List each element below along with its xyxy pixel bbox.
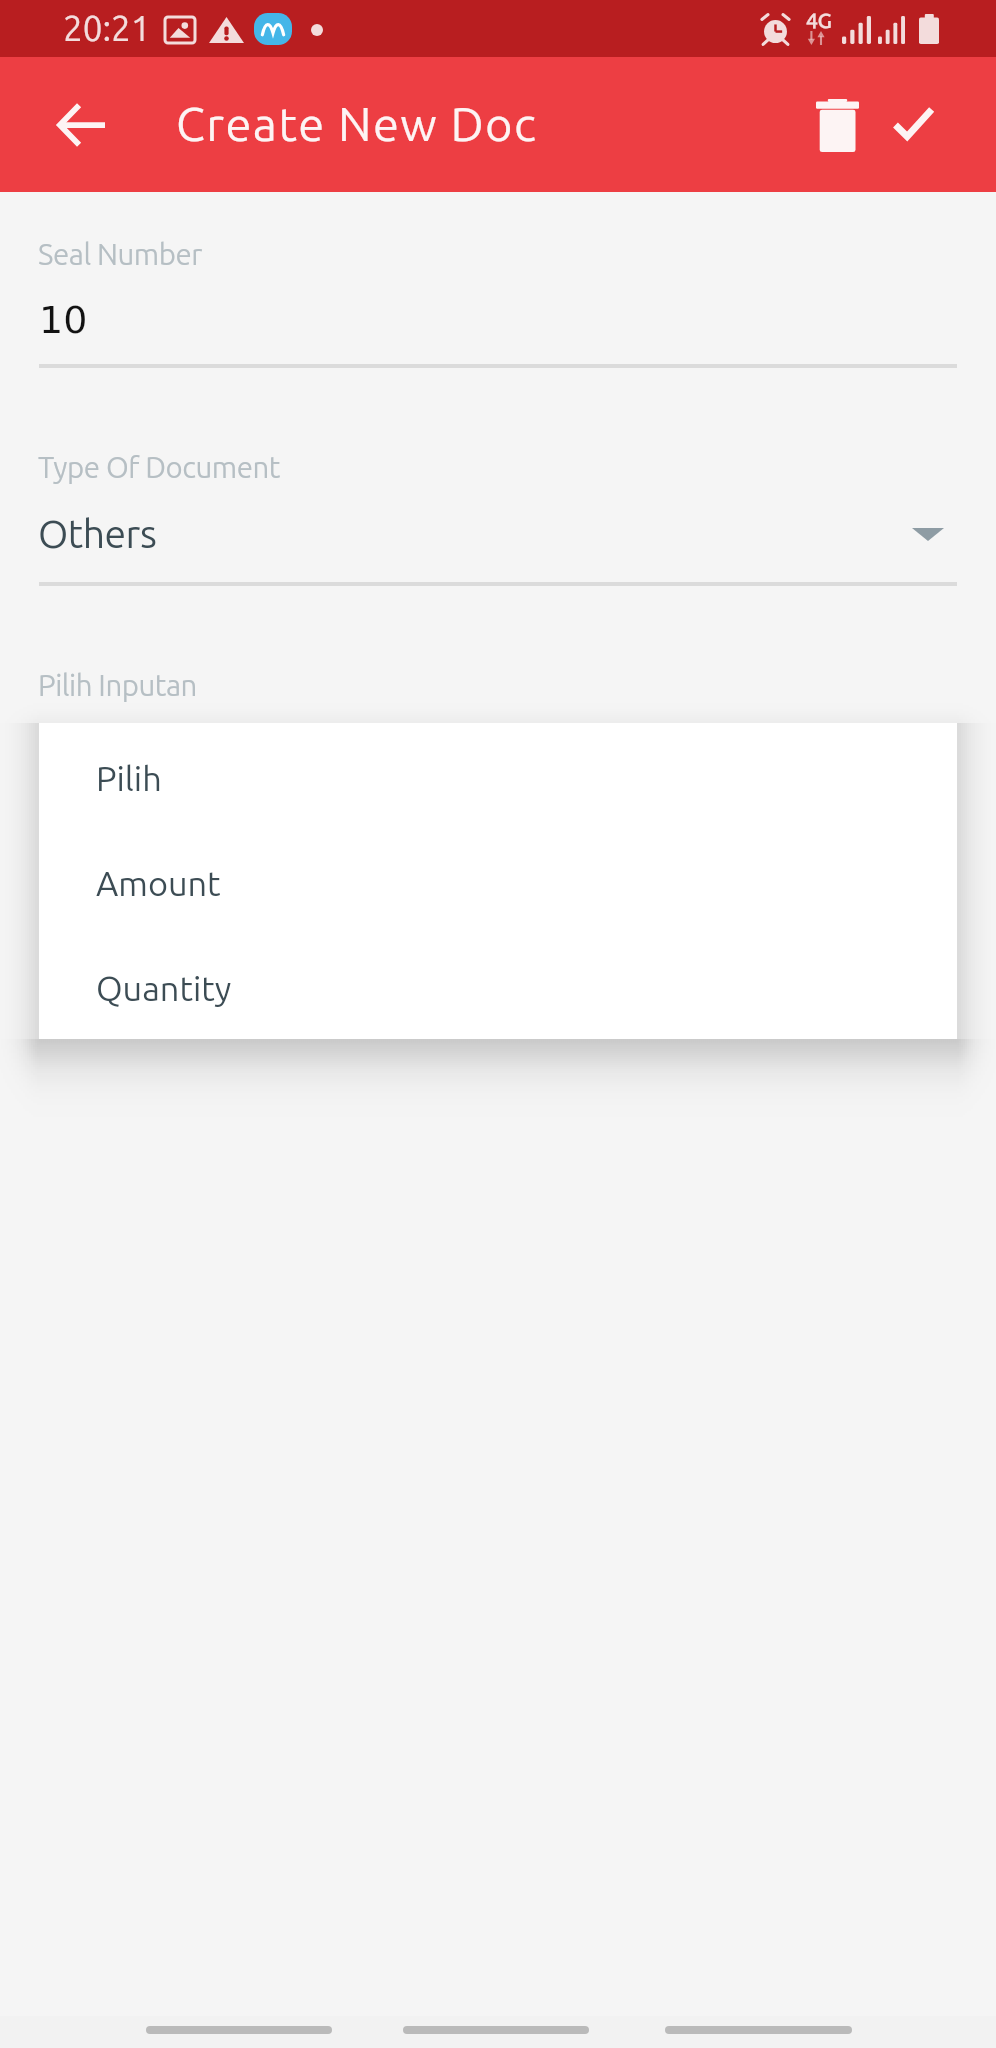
- staticText: Pilih: [96, 759, 162, 797]
- staticText: Others: [38, 512, 157, 556]
- staticText: Pilih Inputan: [38, 669, 197, 702]
- staticText: 10: [39, 298, 88, 342]
- button[interactable]: Quantity: [39, 933, 957, 1038]
- button[interactable]: Amount: [39, 828, 957, 933]
- staticText: 4G: [806, 8, 832, 32]
- button[interactable]: Delete: [790, 78, 884, 172]
- button[interactable]: Recent apps: [146, 2026, 332, 2034]
- button[interactable]: Save: [866, 78, 960, 172]
- staticText: 20:21: [63, 8, 151, 47]
- staticText: Create New Doc: [176, 97, 538, 150]
- staticText: Amount: [96, 864, 221, 902]
- button[interactable]: Back: [665, 2026, 852, 2034]
- button[interactable]: Navigate up: [34, 78, 128, 172]
- staticText: Type Of Document: [38, 451, 280, 484]
- staticText: Quantity: [96, 969, 232, 1007]
- button[interactable]: Type Of Document dropdown: [0, 500, 996, 564]
- staticText: Seal Number: [38, 238, 202, 271]
- button[interactable]: Pilih: [39, 723, 957, 828]
- button[interactable]: Home: [403, 2026, 589, 2034]
